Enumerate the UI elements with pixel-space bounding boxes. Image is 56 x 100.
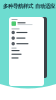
button[interactable] — [9, 57, 44, 61]
button[interactable] — [9, 50, 44, 54]
button[interactable] — [9, 31, 44, 36]
button[interactable] — [9, 54, 44, 57]
button[interactable] — [9, 42, 44, 48]
button[interactable] — [9, 21, 44, 28]
staticText: 多种导航样式 自动适应 — [3, 3, 55, 10]
button[interactable] — [9, 36, 44, 42]
